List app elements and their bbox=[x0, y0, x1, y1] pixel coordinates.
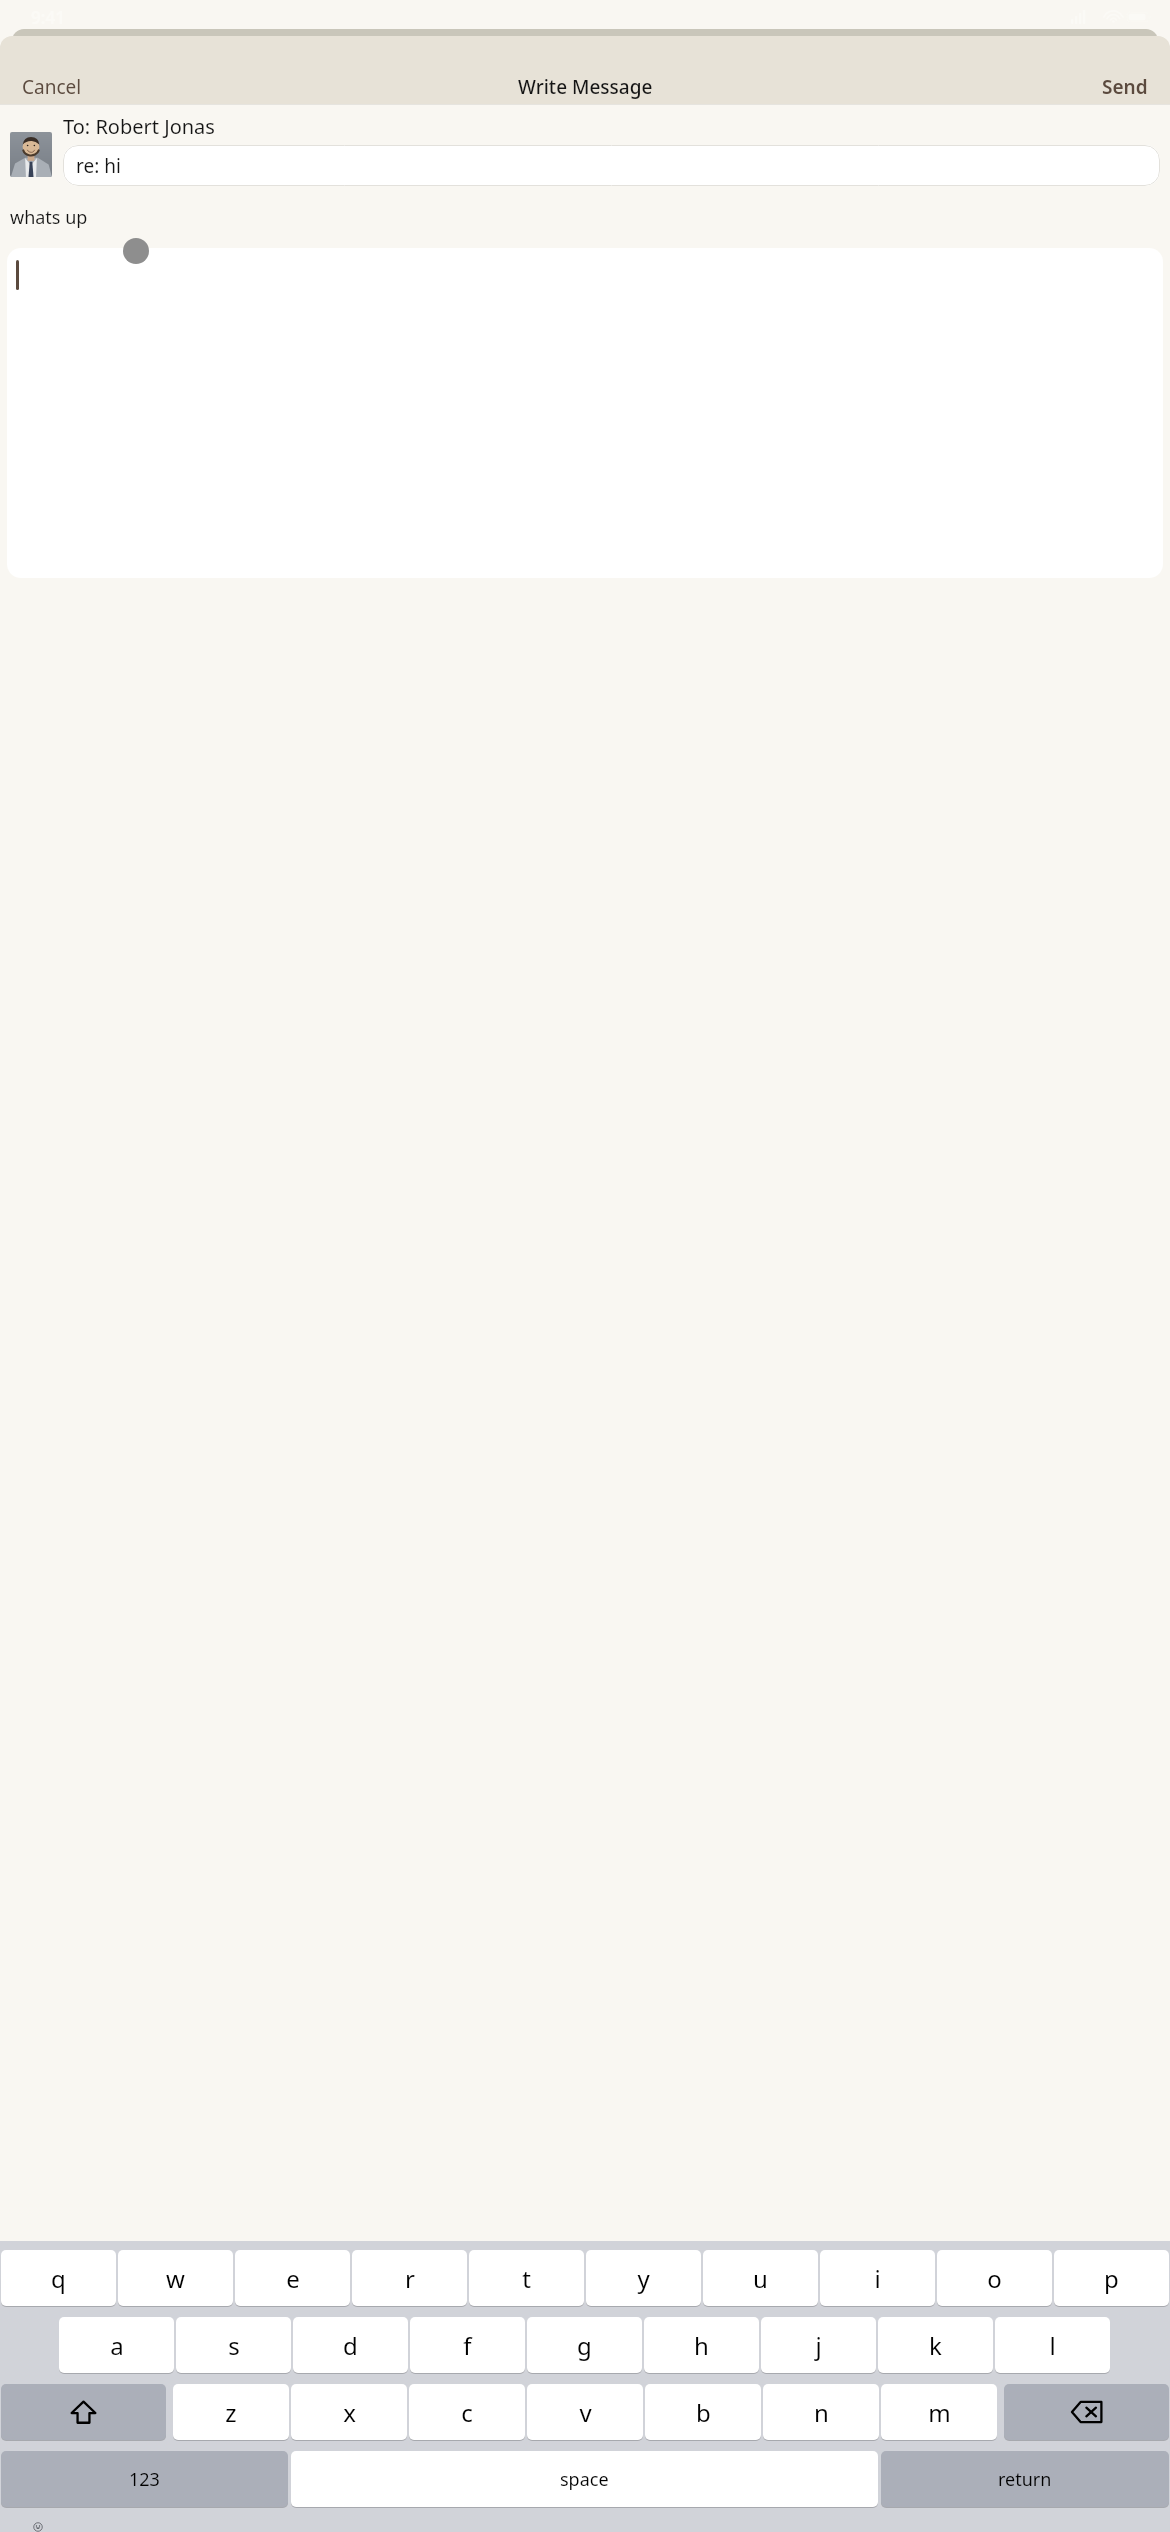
button[interactable]: c bbox=[409, 2384, 525, 2440]
staticText: g bbox=[577, 2329, 592, 2362]
button[interactable]: i bbox=[820, 2250, 935, 2306]
staticText: l bbox=[1049, 2329, 1056, 2362]
button[interactable]: m bbox=[881, 2384, 997, 2440]
button[interactable]: g bbox=[527, 2317, 642, 2373]
staticText: space bbox=[560, 2467, 609, 2492]
button[interactable]: n bbox=[763, 2384, 879, 2440]
button[interactable]: a bbox=[59, 2317, 174, 2373]
staticText: z bbox=[225, 2396, 237, 2429]
button[interactable]: z bbox=[173, 2384, 289, 2440]
staticText: d bbox=[343, 2329, 358, 2362]
staticText: t bbox=[522, 2262, 531, 2295]
button[interactable]: q bbox=[1, 2250, 116, 2306]
button[interactable]: y bbox=[586, 2250, 701, 2306]
staticText: e bbox=[286, 2262, 300, 2295]
button[interactable]: re: hi bbox=[63, 145, 1160, 186]
button[interactable]: 123 bbox=[1, 2451, 288, 2507]
staticText: a bbox=[110, 2329, 124, 2362]
staticText: j bbox=[815, 2329, 822, 2362]
button[interactable]: r bbox=[352, 2250, 467, 2306]
button[interactable]: Resize bbox=[123, 238, 149, 264]
staticText: n bbox=[814, 2396, 829, 2429]
staticText: o bbox=[987, 2262, 1002, 2295]
staticText: 123 bbox=[129, 2467, 160, 2492]
button[interactable]: w bbox=[118, 2250, 233, 2306]
staticText: u bbox=[753, 2262, 768, 2295]
button[interactable]: space bbox=[291, 2451, 878, 2507]
staticText: r bbox=[405, 2262, 415, 2295]
button[interactable]: l bbox=[995, 2317, 1110, 2373]
button[interactable]: Cancel bbox=[10, 70, 94, 104]
button[interactable]: t bbox=[469, 2250, 584, 2306]
staticText: q bbox=[51, 2262, 66, 2295]
staticText: s bbox=[228, 2329, 240, 2362]
staticText: whats up bbox=[10, 205, 88, 230]
button[interactable]: return bbox=[881, 2451, 1169, 2507]
staticText: Cancel bbox=[22, 74, 82, 100]
button[interactable]: j bbox=[761, 2317, 876, 2373]
button[interactable]: Emoji keyboard bbox=[16, 2522, 60, 2532]
button[interactable]: h bbox=[644, 2317, 759, 2373]
button[interactable]: v bbox=[527, 2384, 643, 2440]
button[interactable]: e bbox=[235, 2250, 350, 2306]
staticText: Write Message bbox=[518, 74, 653, 100]
staticText: b bbox=[696, 2396, 711, 2429]
staticText: k bbox=[929, 2329, 942, 2362]
button[interactable] bbox=[7, 248, 1163, 578]
button[interactable]: d bbox=[293, 2317, 408, 2373]
staticText: p bbox=[1104, 2262, 1119, 2295]
staticText: Send bbox=[1102, 74, 1148, 100]
staticText: w bbox=[166, 2262, 185, 2295]
button[interactable]: Send bbox=[1090, 70, 1160, 104]
button[interactable]: s bbox=[176, 2317, 291, 2373]
button[interactable]: Shift bbox=[1, 2384, 166, 2440]
staticText: v bbox=[579, 2396, 592, 2429]
staticText: i bbox=[874, 2262, 881, 2295]
button[interactable]: o bbox=[937, 2250, 1052, 2306]
button[interactable]: u bbox=[703, 2250, 818, 2306]
button[interactable] bbox=[10, 132, 52, 177]
staticText: h bbox=[694, 2329, 709, 2362]
staticText: x bbox=[343, 2396, 356, 2429]
staticText: re: hi bbox=[76, 153, 121, 179]
staticText: return bbox=[998, 2467, 1052, 2492]
button[interactable]: b bbox=[645, 2384, 761, 2440]
button[interactable]: k bbox=[878, 2317, 993, 2373]
staticText: y bbox=[637, 2262, 650, 2295]
staticText: c bbox=[461, 2396, 473, 2429]
button[interactable]: Backspace bbox=[1004, 2384, 1169, 2440]
staticText: f bbox=[463, 2329, 472, 2362]
button[interactable]: x bbox=[291, 2384, 407, 2440]
button[interactable]: p bbox=[1054, 2250, 1169, 2306]
staticText: To: Robert Jonas bbox=[63, 113, 215, 140]
staticText: m bbox=[928, 2396, 951, 2429]
button[interactable]: f bbox=[410, 2317, 525, 2373]
